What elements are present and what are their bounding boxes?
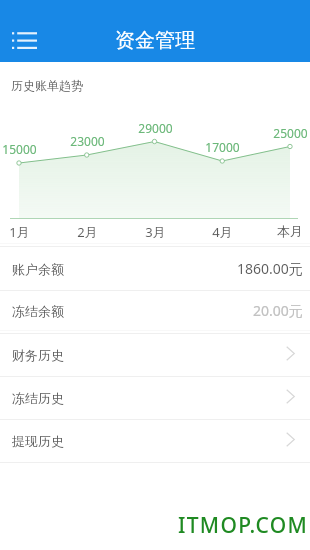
staticText: 4月 <box>212 223 233 241</box>
staticText: 17000 <box>205 139 240 155</box>
staticText: 2月 <box>77 223 98 241</box>
staticText: 23000 <box>70 133 105 149</box>
staticText: 提现历史 <box>12 433 64 449</box>
staticText: 1月 <box>9 223 30 241</box>
button[interactable]: 提现历史 <box>0 420 310 462</box>
staticText: 1860.00元 <box>237 259 303 278</box>
staticText: 本月 <box>277 223 303 239</box>
button[interactable]: Menu <box>4 22 45 59</box>
staticText: 20.00元 <box>253 301 303 320</box>
staticText: 资金管理 <box>115 28 195 53</box>
staticText: 历史账单趋势 <box>11 78 83 93</box>
staticText: 29000 <box>138 120 173 136</box>
button[interactable]: 财务历史 <box>0 334 310 376</box>
staticText: 25000 <box>273 125 308 141</box>
button[interactable]: 冻结历史 <box>0 377 310 419</box>
staticText: 15000 <box>2 141 37 157</box>
staticText: 财务历史 <box>12 347 64 363</box>
staticText: 3月 <box>145 223 166 241</box>
staticText: 账户余额 <box>12 261 64 277</box>
staticText: 冻结余额 <box>12 303 64 319</box>
button[interactable]: 账户余额 <box>0 247 310 290</box>
button[interactable]: 冻结余额 <box>0 291 310 330</box>
staticText: ITMOP.COM <box>178 511 309 540</box>
staticText: 冻结历史 <box>12 390 64 406</box>
